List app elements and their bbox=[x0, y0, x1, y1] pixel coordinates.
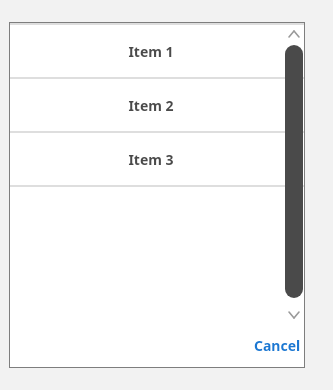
staticText: Item 1 bbox=[128, 42, 174, 61]
button[interactable]: Item 3 bbox=[10, 133, 304, 185]
button[interactable]: Item 1 bbox=[10, 25, 304, 77]
button[interactable]: Item 2 bbox=[10, 79, 304, 131]
button[interactable]: Cancel bbox=[248, 333, 307, 358]
button[interactable]: Scroll up bbox=[285, 23, 303, 45]
staticText: Cancel bbox=[254, 336, 301, 355]
button[interactable]: Scroll thumb bbox=[285, 45, 303, 298]
staticText: Item 2 bbox=[128, 96, 174, 115]
button[interactable]: Scroll down bbox=[285, 304, 303, 326]
staticText: Item 3 bbox=[128, 150, 174, 169]
